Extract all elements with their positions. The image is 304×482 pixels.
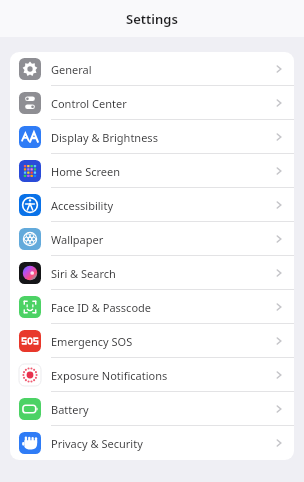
other: Open Siri & Search [273,267,285,279]
button[interactable]: Home Screen [10,154,294,188]
other: Open Battery [273,403,285,415]
button[interactable]: Accessibility [10,188,294,222]
button[interactable]: Display & Brightness [10,120,294,154]
staticText: Siri & Search [51,266,273,281]
button[interactable]: Emergency SOS [10,324,294,358]
button[interactable]: Siri & Search [10,256,294,290]
other: Open Face ID & Passcode [273,301,285,313]
staticText: Display & Brightness [51,130,273,145]
button[interactable]: General [10,52,294,86]
staticText: Home Screen [51,164,273,179]
other: Open General [273,63,285,75]
staticText: Privacy & Security [51,436,273,451]
staticText: Settings [126,10,178,28]
staticText: Face ID & Passcode [51,300,273,315]
other: Open Accessibility [273,199,285,211]
staticText: Battery [51,402,273,417]
other: Open Privacy & Security [273,437,285,449]
button[interactable]: Exposure Notifications [10,358,294,392]
staticText: Accessibility [51,198,273,213]
button[interactable]: Control Center [10,86,294,120]
other: Open Control Center [273,97,285,109]
staticText: Wallpaper [51,232,273,247]
button[interactable]: Privacy & Security [10,426,294,460]
other: Open Display & Brightness [273,131,285,143]
button[interactable]: Wallpaper [10,222,294,256]
other: Open Wallpaper [273,233,285,245]
button[interactable]: Battery [10,392,294,426]
other: Open Emergency SOS [273,335,285,347]
other: Open Exposure Notifications [273,369,285,381]
staticText: Emergency SOS [51,334,273,349]
staticText: Exposure Notifications [51,368,273,383]
staticText: General [51,62,273,77]
other: Open Home Screen [273,165,285,177]
staticText: Control Center [51,96,273,111]
button[interactable]: Face ID & Passcode [10,290,294,324]
